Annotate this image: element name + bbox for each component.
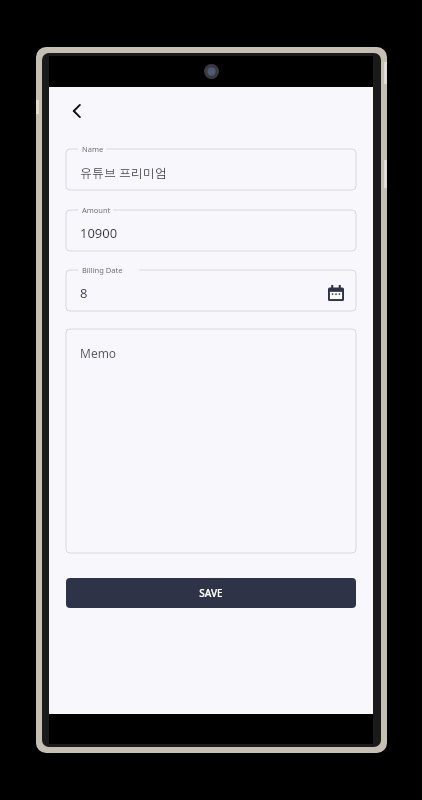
button[interactable]: Billing Date (66, 270, 356, 311)
button[interactable]: Amount (66, 210, 356, 251)
staticText: 8 (80, 284, 88, 302)
button[interactable]: Pick billing date (326, 283, 346, 303)
staticText: SAVE (199, 586, 223, 600)
staticText: Memo (80, 345, 117, 361)
button[interactable]: Memo (66, 329, 356, 553)
staticText: Billing Date (82, 265, 123, 275)
button[interactable]: SAVE (66, 578, 356, 608)
button[interactable]: Back (59, 93, 95, 129)
staticText: Amount (82, 205, 111, 215)
staticText: 10900 (80, 224, 118, 242)
staticText: 유튜브 프리미엄 (80, 164, 168, 180)
staticText: Name (82, 144, 104, 154)
button[interactable]: Name (66, 149, 356, 190)
